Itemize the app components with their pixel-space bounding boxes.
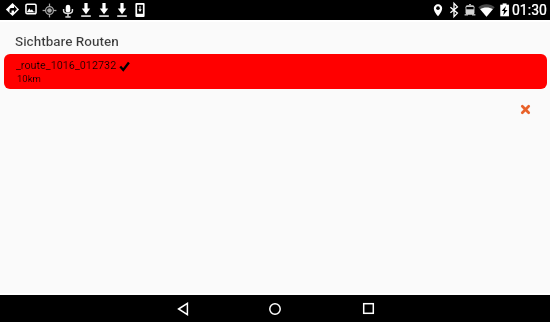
staticText: Sichtbare Routen [15,33,119,49]
staticText: _route_1016_012732 [16,59,117,72]
staticText: 01:30 [512,2,547,18]
button[interactable]: Remove route [511,95,539,123]
button[interactable]: Back [160,295,206,322]
button[interactable]: _route_1016_012732 [4,54,547,89]
staticText: 10km [17,73,41,84]
button[interactable]: Recent apps [345,295,391,322]
button[interactable]: Home [252,295,298,322]
